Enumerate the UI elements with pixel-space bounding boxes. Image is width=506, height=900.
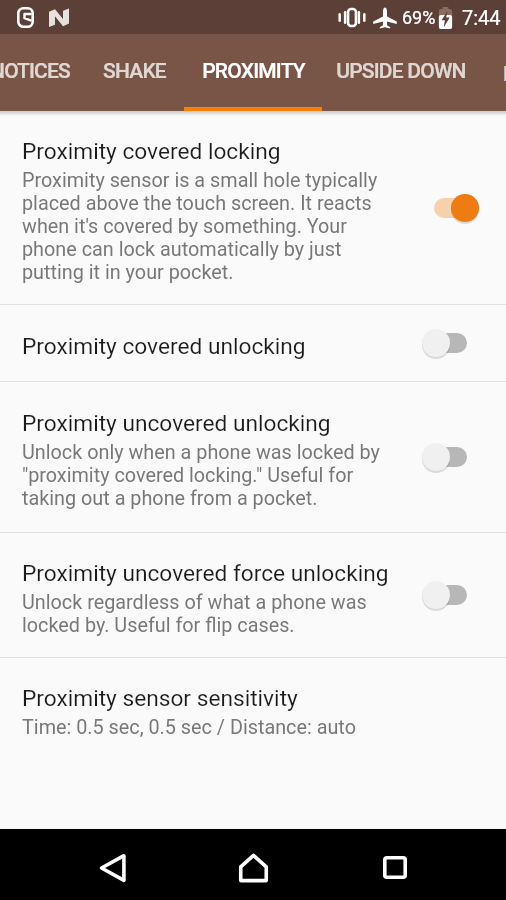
button[interactable]: Disabled bbox=[422, 326, 479, 360]
button[interactable]: Proximity uncovered force unlocking bbox=[0, 533, 506, 657]
staticText: Proximity covered unlocking bbox=[22, 333, 306, 360]
staticText: Proximity uncovered force unlocking bbox=[22, 560, 389, 587]
staticText: Proximity sensor is a small hole typical… bbox=[22, 169, 394, 284]
staticText: Proximity sensor sensitivity bbox=[22, 685, 298, 712]
staticText: Proximity covered locking bbox=[22, 138, 281, 165]
staticText: SHAKE bbox=[103, 59, 166, 84]
button[interactable]: SHAKE bbox=[85, 34, 184, 111]
staticText: NOTICES bbox=[0, 59, 70, 84]
button[interactable]: Disabled bbox=[422, 578, 479, 612]
button[interactable]: NOTICES bbox=[0, 34, 85, 111]
button[interactable]: Disabled bbox=[422, 440, 479, 474]
button[interactable]: Proximity sensor sensitivity bbox=[0, 658, 506, 759]
staticText: Proximity uncovered unlocking bbox=[22, 410, 331, 437]
button[interactable]: Enabled bbox=[422, 191, 479, 225]
button[interactable]: PROXIMITY bbox=[184, 34, 322, 111]
staticText: HEADSET bbox=[503, 62, 506, 87]
button[interactable]: UPSIDE DOWN bbox=[322, 34, 480, 111]
staticText: 69% bbox=[402, 7, 436, 28]
button[interactable]: Proximity covered locking bbox=[0, 111, 506, 304]
button[interactable]: Proximity uncovered unlocking bbox=[0, 382, 506, 532]
button[interactable]: Proximity covered unlocking bbox=[0, 305, 506, 381]
button[interactable]: Home bbox=[213, 832, 294, 900]
staticText: Unlock regardless of what a phone was lo… bbox=[22, 591, 394, 637]
staticText: UPSIDE DOWN bbox=[336, 59, 466, 84]
staticText: Unlock only when a phone was locked by "… bbox=[22, 441, 394, 510]
button[interactable]: Recent apps bbox=[354, 832, 435, 900]
staticText: PROXIMITY bbox=[202, 59, 305, 84]
button[interactable]: Back bbox=[72, 832, 153, 900]
staticText: 7:44 bbox=[462, 6, 501, 29]
staticText: Time: 0.5 sec, 0.5 sec / Distance: auto bbox=[22, 716, 356, 739]
